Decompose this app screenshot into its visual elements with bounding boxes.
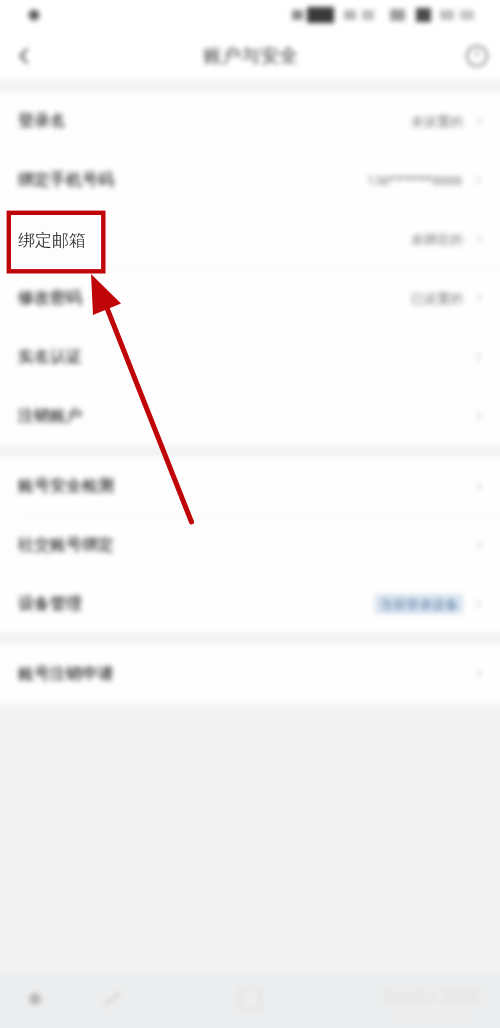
staticText: 实名认证 bbox=[18, 347, 82, 367]
button[interactable]: 绑定邮箱 bbox=[9, 211, 103, 269]
staticText: 138******8888 bbox=[367, 171, 463, 189]
staticText: 未绑定的 bbox=[411, 231, 463, 247]
staticText: 实名认证 bbox=[18, 347, 82, 367]
button[interactable]: 绑定邮箱 bbox=[0, 210, 500, 269]
staticText: 注销账户 bbox=[18, 406, 82, 426]
staticText: 账号安全检测 bbox=[18, 476, 114, 496]
staticText: 当前登录设备 bbox=[380, 596, 458, 612]
staticText: 已设置的 bbox=[411, 290, 463, 306]
staticText: 登录名 bbox=[18, 111, 66, 131]
button[interactable]: 登录名 bbox=[0, 92, 500, 151]
staticText: 账户与安全 bbox=[203, 44, 298, 68]
button[interactable]: Back bbox=[0, 32, 47, 79]
staticText: 设备管理 bbox=[18, 594, 82, 614]
button[interactable]: 绑定手机号码 bbox=[0, 151, 500, 210]
button[interactable]: 实名认证 bbox=[0, 328, 500, 387]
staticText: 未设置的 bbox=[411, 113, 463, 129]
staticText: 修改密码 bbox=[18, 288, 82, 308]
button[interactable]: 账号安全检测 bbox=[0, 457, 500, 516]
staticText: 账号注销申请 bbox=[18, 664, 114, 684]
staticText: 登录名 bbox=[18, 111, 66, 131]
button[interactable]: 注销账户 bbox=[0, 387, 500, 445]
staticText: 绑定邮箱 bbox=[18, 229, 82, 249]
button[interactable]: Back bbox=[19, 983, 51, 1015]
button[interactable]: 设备管理 bbox=[0, 575, 500, 633]
staticText: 注销账户 bbox=[18, 406, 82, 426]
staticText: 已设置的 bbox=[411, 290, 463, 306]
button[interactable]: 社交账号绑定 bbox=[0, 516, 500, 575]
staticText: 账号安全检测 bbox=[18, 476, 114, 496]
staticText: 设备管理 bbox=[18, 594, 82, 614]
staticText: 绑定手机号码 bbox=[18, 170, 114, 190]
staticText: 绑定手机号码 bbox=[18, 170, 114, 190]
staticText: 未设置的 bbox=[411, 113, 463, 129]
button[interactable]: 账号注销申请 bbox=[0, 645, 500, 703]
staticText: 修改密码 bbox=[18, 288, 82, 308]
staticText: 138******8888 bbox=[367, 171, 463, 189]
staticText: 账号注销申请 bbox=[18, 664, 114, 684]
button[interactable]: 修改密码 bbox=[0, 269, 500, 328]
staticText: 社交账号绑定 bbox=[18, 535, 114, 555]
button[interactable]: Help bbox=[453, 32, 500, 79]
staticText: 社交账号绑定 bbox=[18, 535, 114, 555]
staticText: 未绑定的 bbox=[411, 231, 463, 247]
staticText: 绑定邮箱 bbox=[18, 229, 82, 249]
staticText: 绑定邮箱 bbox=[18, 230, 86, 251]
